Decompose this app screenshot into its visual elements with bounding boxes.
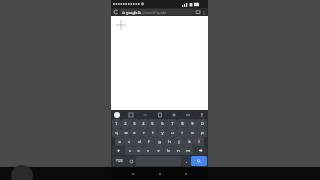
button[interactable]: ?123 xyxy=(112,156,126,166)
button[interactable]: Search with camera xyxy=(195,9,201,15)
button[interactable]: Backspace xyxy=(193,146,207,155)
button[interactable]: Shift xyxy=(112,146,125,155)
staticText: j xyxy=(178,139,180,144)
staticText: s xyxy=(128,139,130,144)
staticText: z xyxy=(129,148,131,153)
button[interactable]: 5 xyxy=(148,119,157,128)
staticText: l xyxy=(198,139,200,144)
button[interactable]: v xyxy=(153,146,163,155)
staticText: /search?q=abc xyxy=(143,10,167,15)
button[interactable]: g xyxy=(154,137,164,146)
button[interactable]: e xyxy=(130,128,139,137)
button[interactable]: f xyxy=(144,137,154,146)
staticText: ?123 xyxy=(116,159,123,163)
staticText: n xyxy=(177,148,180,153)
staticText: b xyxy=(167,148,170,153)
button[interactable]: i xyxy=(177,128,187,137)
button[interactable]: Period xyxy=(181,156,191,166)
button[interactable]: l xyxy=(194,137,204,146)
staticText: u xyxy=(171,130,174,135)
button[interactable]: Keyboard tool 6 xyxy=(199,112,205,118)
button[interactable]: m xyxy=(183,146,193,155)
button[interactable]: k xyxy=(184,137,194,146)
button[interactable]: More options xyxy=(201,10,206,15)
button[interactable]: 3 xyxy=(130,119,139,128)
staticText: 1 xyxy=(115,121,118,126)
button[interactable]: Keyboard tool 4 xyxy=(171,112,177,118)
button[interactable]: 9 xyxy=(187,119,197,128)
staticText: 9 xyxy=(191,121,194,126)
button[interactable]: 4 xyxy=(139,119,148,128)
staticText: t xyxy=(152,130,154,135)
staticText: c xyxy=(147,148,149,153)
button[interactable]: d xyxy=(134,137,144,146)
staticText: d xyxy=(138,139,141,144)
button[interactable]: o xyxy=(187,128,197,137)
staticText: a xyxy=(118,139,121,144)
button[interactable]: c xyxy=(143,146,153,155)
button[interactable]: t xyxy=(148,128,157,137)
button[interactable]: Emoji xyxy=(126,156,136,166)
staticText: q xyxy=(115,130,118,135)
button[interactable]: w xyxy=(121,128,130,137)
staticText: w xyxy=(124,130,128,135)
button[interactable]: 0 xyxy=(197,119,207,128)
button[interactable]: Keyboard tool 5 xyxy=(185,112,191,118)
staticText: o xyxy=(191,130,194,135)
button[interactable]: h xyxy=(164,137,174,146)
staticText: 8 xyxy=(181,121,184,126)
staticText: 0 xyxy=(201,121,204,126)
staticText: 3 xyxy=(133,121,136,126)
button[interactable]: Home xyxy=(155,169,165,179)
button[interactable]: Keyboard tool 3 xyxy=(157,112,163,118)
button[interactable]: s xyxy=(124,137,134,146)
staticText: 4 xyxy=(142,121,145,126)
button[interactable]: y xyxy=(157,128,167,137)
button[interactable]: 2 xyxy=(121,119,130,128)
button[interactable]: z xyxy=(125,146,134,155)
button[interactable]: Back xyxy=(128,169,138,179)
staticText: 6 xyxy=(161,121,164,126)
staticText: p xyxy=(201,130,204,135)
staticText: 5 xyxy=(151,121,154,126)
button[interactable]: Keyboard tool 2 xyxy=(142,112,148,118)
staticText: x xyxy=(137,148,140,153)
button[interactable]: q xyxy=(112,128,121,137)
button[interactable]: u xyxy=(167,128,177,137)
staticText: g xyxy=(158,139,161,144)
staticText: google.lk xyxy=(126,10,142,15)
staticText: 7 xyxy=(171,121,174,126)
button[interactable]: google.lk xyxy=(120,9,194,15)
staticText: 2 xyxy=(124,121,127,126)
staticText: e xyxy=(133,130,136,135)
staticText: r xyxy=(143,130,145,135)
staticText: k xyxy=(188,139,191,144)
button[interactable]: p xyxy=(197,128,207,137)
button[interactable]: Back xyxy=(113,9,119,15)
button[interactable]: b xyxy=(163,146,173,155)
button[interactable]: x xyxy=(134,146,143,155)
button[interactable]: Search xyxy=(191,156,207,166)
button[interactable]: Google xyxy=(114,112,120,118)
button[interactable]: 7 xyxy=(167,119,177,128)
staticText: i xyxy=(181,130,183,135)
button[interactable]: 1 xyxy=(112,119,121,128)
staticText: m xyxy=(186,148,190,153)
button[interactable]: Recents xyxy=(181,169,191,179)
button[interactable]: 6 xyxy=(157,119,167,128)
button[interactable]: n xyxy=(173,146,183,155)
button[interactable]: 8 xyxy=(177,119,187,128)
button[interactable]: j xyxy=(174,137,184,146)
staticText: v xyxy=(157,148,160,153)
staticText: f xyxy=(148,139,150,144)
button[interactable]: Keyboard tool 1 xyxy=(128,112,134,118)
staticText: y xyxy=(161,130,164,135)
button[interactable]: a xyxy=(115,137,124,146)
staticText: h xyxy=(168,139,171,144)
button[interactable]: r xyxy=(139,128,148,137)
